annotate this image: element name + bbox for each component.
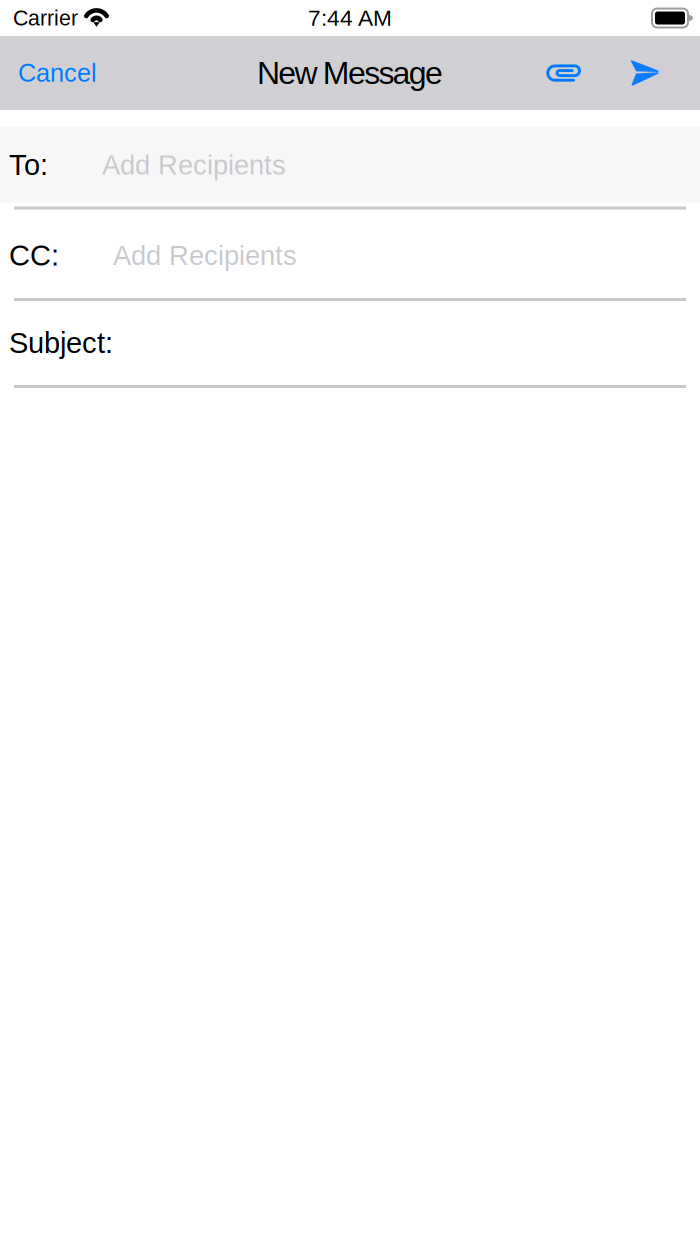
staticText: Cancel <box>18 59 97 87</box>
staticText: Add Recipients <box>102 150 286 180</box>
staticText: 7:44 AM <box>308 5 392 31</box>
staticText: To: <box>9 149 48 181</box>
staticText: Carrier <box>13 6 78 30</box>
staticText: New Message <box>257 55 443 91</box>
button[interactable]: Send <box>599 36 691 110</box>
button[interactable]: Subject: <box>0 301 700 385</box>
button[interactable]: Cancel <box>0 36 111 110</box>
staticText: Add Recipients <box>113 240 297 271</box>
button[interactable]: CC: <box>0 213 700 298</box>
staticText: CC: <box>9 239 59 272</box>
button[interactable]: To: <box>0 127 700 203</box>
button[interactable]: Attach <box>530 36 599 110</box>
staticText: Subject: <box>9 327 113 359</box>
